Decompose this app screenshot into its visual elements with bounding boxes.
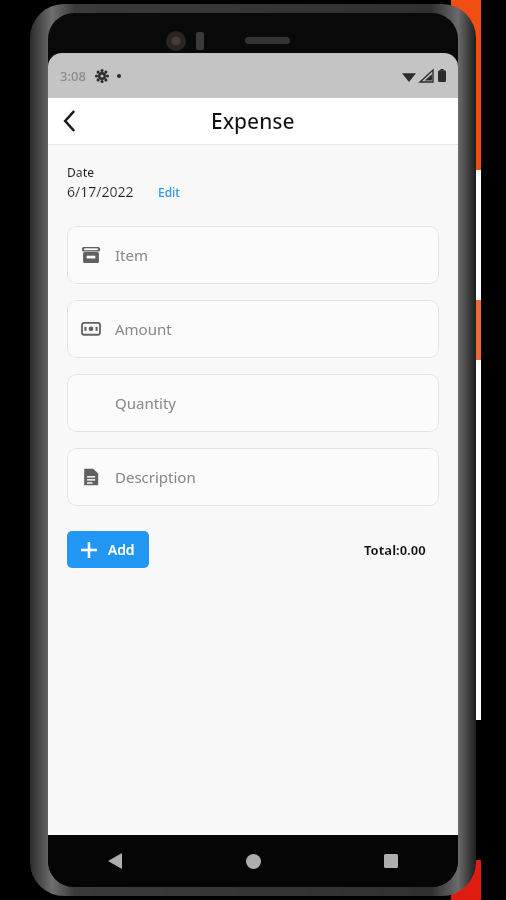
button[interactable]: Back xyxy=(48,99,92,143)
button[interactable]: Add xyxy=(67,531,149,568)
staticText: Total:0.00 xyxy=(364,541,426,559)
staticText: Edit xyxy=(158,184,180,200)
staticText: 3:08 xyxy=(60,67,86,85)
staticText: Description xyxy=(115,467,196,487)
button[interactable]: Home xyxy=(232,840,274,882)
staticText: Date xyxy=(67,164,95,180)
staticText: Expense xyxy=(211,107,295,136)
staticText: Item xyxy=(115,245,148,265)
button[interactable]: Quantity xyxy=(67,374,439,432)
staticText: Add xyxy=(108,540,135,559)
button[interactable]: Amount xyxy=(67,300,439,358)
button[interactable]: Edit xyxy=(158,184,180,200)
button[interactable]: Item xyxy=(67,226,439,284)
staticText: 6/17/2022 xyxy=(67,182,134,201)
button[interactable]: Recents xyxy=(370,840,412,882)
button[interactable]: Back xyxy=(94,840,136,882)
button[interactable]: Description xyxy=(67,448,439,506)
staticText: Amount xyxy=(115,319,172,339)
staticText: Quantity xyxy=(115,393,177,413)
